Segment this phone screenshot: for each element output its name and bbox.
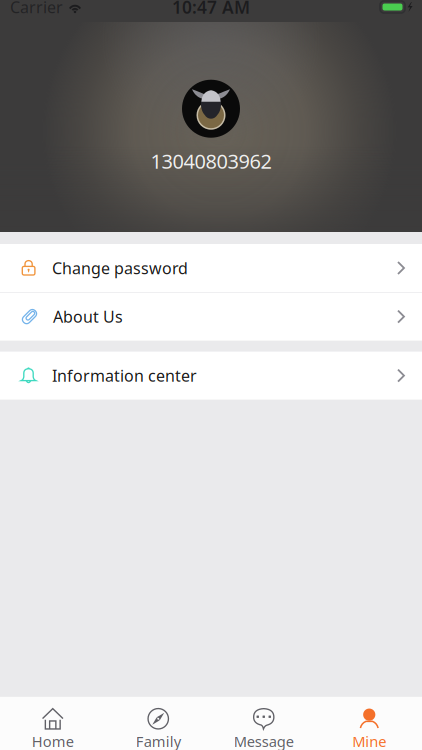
staticText: Change password — [52, 257, 188, 279]
button[interactable]: Message — [211, 696, 316, 750]
staticText: Home — [32, 731, 74, 750]
button[interactable]: Mine — [316, 696, 422, 750]
staticText: Carrier — [10, 0, 63, 18]
staticText: 13040803962 — [150, 148, 271, 174]
staticText: Message — [234, 731, 294, 750]
button[interactable]: Family — [105, 696, 211, 750]
staticText: Information center — [52, 365, 197, 386]
staticText: Mine — [352, 731, 386, 750]
button[interactable]: Information center — [0, 352, 422, 400]
button[interactable]: About Us — [0, 293, 422, 341]
button[interactable]: Home — [0, 696, 105, 750]
staticText: About Us — [53, 306, 123, 327]
button[interactable]: Change password — [0, 244, 422, 292]
staticText: 10:47 AM — [172, 0, 250, 18]
staticText: Family — [136, 731, 181, 750]
